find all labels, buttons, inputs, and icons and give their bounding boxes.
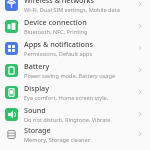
other: Open Wireless & networks [135,0,145,9]
other: Open Apps & notifications [135,43,145,53]
staticText: Bluetooth, NFC, Printing [24,28,88,36]
staticText: Wi-Fi, Dual SIM settings, Mobile data [24,6,120,14]
staticText: Memory, Storage cleaner [24,136,90,143]
staticText: Permissions, Default apps [24,50,93,58]
staticText: Device connection [24,17,87,27]
staticText: Power saving mode, Battery usage [24,72,116,80]
staticText: Eye comfort, Home screen style, Wallpape… [24,94,132,102]
other: Open Device connection [135,21,145,31]
button[interactable]: Battery [0,59,150,81]
other: Open Sound [135,109,145,119]
other: Open Display [135,87,145,97]
other: Open Storage [135,129,145,139]
staticText: Battery [24,61,50,71]
other: Open Battery [135,65,145,75]
button[interactable]: Storage [0,125,150,143]
staticText: Wireless & networks [24,0,94,5]
button[interactable]: Display [0,81,150,103]
staticText: Display [24,83,49,93]
staticText: Sound [24,105,46,115]
button[interactable]: Wireless & networks [0,0,150,15]
button[interactable]: Apps & notifications [0,37,150,59]
staticText: Do not disturb, Ringtone, Vibrate [24,116,111,124]
button[interactable]: Device connection [0,15,150,37]
staticText: Storage [24,125,51,135]
button[interactable]: Sound [0,103,150,125]
staticText: Apps & notifications [24,39,93,49]
